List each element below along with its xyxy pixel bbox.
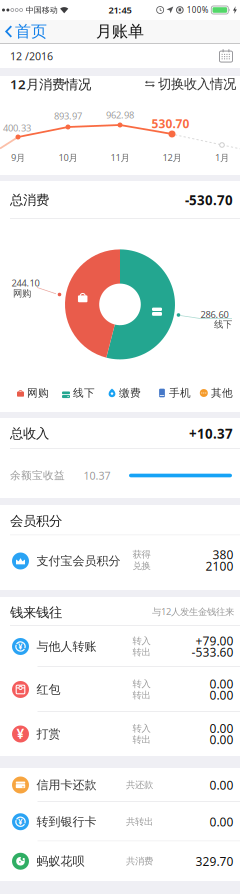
staticText: 中国移动 [26, 5, 58, 15]
staticText: 244.10 [11, 277, 39, 289]
staticText: 0.00 [209, 687, 233, 703]
staticText: 蚂蚁花呗 [36, 854, 84, 869]
staticText: 893.97 [54, 110, 82, 122]
staticText: 红包 [36, 682, 60, 697]
staticText: 获得 [132, 549, 150, 560]
staticText: 12月 [162, 151, 181, 164]
staticText: 切换收入情况 [158, 76, 236, 92]
staticText: ¥ [18, 641, 23, 652]
staticText: 10.37 [83, 468, 110, 483]
staticText: 12 /2016 [10, 49, 53, 63]
staticText: 12月消费情况 [10, 75, 91, 93]
staticText: 兑换 [132, 560, 150, 572]
staticText: 线下 [214, 319, 232, 330]
staticText: 线下 [73, 386, 95, 399]
staticText: 0.00 [209, 732, 233, 748]
button[interactable]: 首页 [0, 20, 240, 44]
button[interactable]: 切换收入情况 [0, 76, 240, 175]
staticText: 1月 [215, 151, 229, 164]
staticText: 0.00 [209, 720, 233, 736]
staticText: 21:45 [108, 4, 131, 16]
staticText: 打赏 [36, 727, 60, 741]
staticText: 100% [187, 5, 209, 15]
staticText: 共消费 [126, 855, 153, 867]
button[interactable]: 红包 [0, 667, 240, 712]
staticText: 10月 [58, 151, 77, 164]
button[interactable]: 信用卡还款 [0, 768, 240, 802]
staticText: 0.00 [209, 814, 233, 830]
staticText: 总收入 [10, 425, 49, 442]
button[interactable]: ¥ [0, 802, 240, 841]
button[interactable]: ¥ [0, 626, 240, 667]
staticText: 0.00 [209, 777, 233, 793]
staticText: ¥ [18, 816, 23, 827]
staticText: 转到银行卡 [36, 814, 96, 829]
staticText: 0.00 [209, 676, 233, 692]
staticText: 286.60 [200, 308, 228, 321]
staticText: 余额宝收益 [10, 469, 65, 482]
staticText: 转入 [132, 678, 150, 690]
staticText: +79.00 [195, 633, 233, 649]
staticText: 329.70 [195, 853, 233, 869]
staticText: 11月 [110, 151, 129, 164]
staticText: 手机 [169, 386, 191, 399]
staticText: -533.60 [191, 644, 233, 660]
staticText: 400.33 [3, 122, 31, 134]
staticText: 其他 [211, 386, 233, 399]
staticText: 共还款 [126, 779, 153, 791]
staticText: 2100 [205, 558, 233, 574]
staticText: 共转出 [126, 816, 153, 827]
staticText: 会员积分 [10, 513, 62, 529]
staticText: -530.70 [185, 191, 233, 209]
staticText: 与12人发生金钱往来 [152, 605, 234, 618]
staticText: 网购 [13, 288, 31, 299]
staticText: 支付宝会员积分 [36, 554, 120, 568]
staticText: +10.37 [189, 425, 233, 442]
button[interactable]: 支付宝会员积分 [0, 535, 240, 590]
staticText: 9月 [11, 151, 25, 164]
staticText: 962.98 [106, 109, 134, 121]
staticText: 缴费 [119, 386, 141, 399]
staticText: 信用卡还款 [36, 778, 96, 792]
staticText: 转入 [132, 635, 150, 647]
staticText: 转出 [132, 646, 150, 658]
button[interactable]: 蚂蚁花呗 [0, 841, 240, 881]
staticText: 首页 [15, 22, 47, 41]
staticText: 总消费 [10, 192, 49, 208]
staticText: 转出 [132, 689, 150, 701]
staticText: 530.70 [151, 115, 189, 131]
staticText: 转入 [132, 723, 150, 734]
button[interactable]: 选择月份 [0, 44, 240, 68]
staticText: 380 [212, 546, 233, 562]
staticText: 月账单 [96, 22, 144, 41]
staticText: 与他人转账 [36, 639, 96, 654]
staticText: 钱来钱往 [10, 604, 62, 621]
staticText: 网购 [27, 386, 49, 399]
button[interactable]: ¥ [0, 712, 240, 756]
staticText: ¥ [16, 725, 24, 742]
staticText: 转出 [132, 734, 150, 745]
